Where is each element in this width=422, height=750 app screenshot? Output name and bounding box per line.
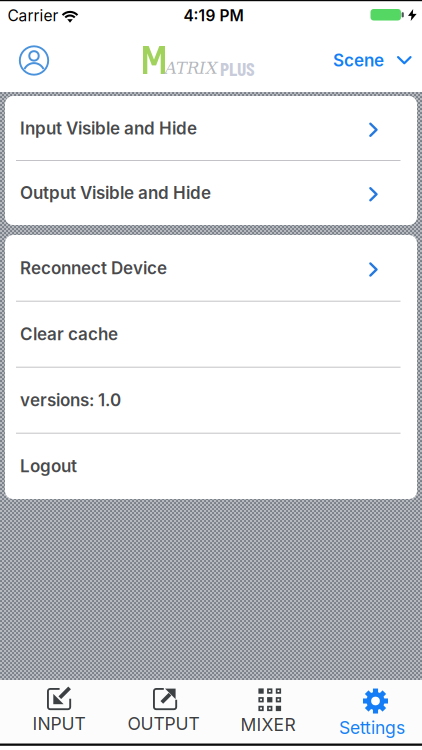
button[interactable]: Logout	[5, 433, 417, 499]
button[interactable]: Clear cache	[5, 301, 417, 367]
button[interactable]: versions: 1.0	[5, 367, 417, 433]
button[interactable]: MIXER	[216, 680, 320, 743]
staticText: Input Visible and Hide	[20, 118, 197, 139]
staticText: ATRIX	[165, 58, 218, 78]
button[interactable]: OUTPUT	[111, 680, 215, 743]
button[interactable]: Profile	[19, 45, 49, 75]
staticText: Carrier	[7, 6, 58, 25]
staticText: versions: 1.0	[20, 390, 121, 410]
button[interactable]: Output Visible and Hide	[5, 160, 417, 225]
button[interactable]: Input Visible and Hide	[5, 96, 417, 160]
staticText: Logout	[20, 456, 77, 476]
staticText: PLUS	[220, 56, 255, 80]
staticText: Reconnect Device	[20, 258, 167, 278]
button[interactable]: INPUT	[7, 680, 111, 743]
staticText: OUTPUT	[127, 713, 199, 734]
staticText: MIXER	[240, 714, 295, 735]
staticText: 4:19 PM	[183, 6, 243, 25]
staticText: Scene	[333, 50, 384, 71]
button[interactable]: Settings	[320, 680, 422, 743]
button[interactable]: Reconnect Device	[5, 235, 417, 301]
staticText: Output Visible and Hide	[20, 182, 211, 203]
staticText: INPUT	[32, 713, 85, 734]
button[interactable]: Scene	[333, 50, 411, 71]
staticText: Clear cache	[20, 324, 118, 344]
staticText: Settings	[339, 717, 405, 738]
